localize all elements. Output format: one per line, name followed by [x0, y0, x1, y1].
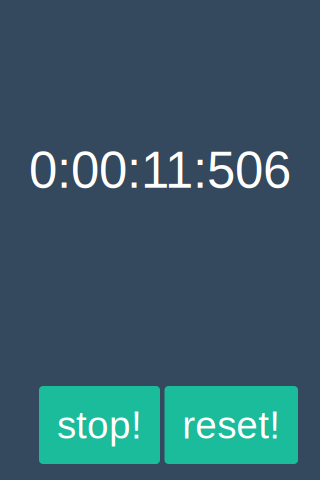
staticText: reset!	[182, 403, 280, 447]
button[interactable]: stop!	[39, 386, 160, 464]
staticText: stop!	[57, 403, 142, 447]
staticText: 0:00:11:506	[29, 141, 291, 198]
button[interactable]: reset!	[164, 386, 298, 464]
